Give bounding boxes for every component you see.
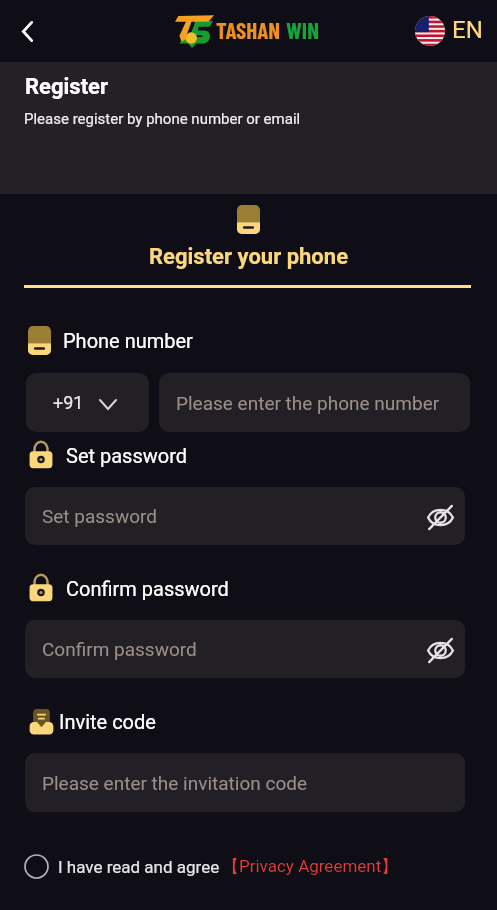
button[interactable]: EN (415, 16, 483, 46)
staticText: Set password (42, 505, 157, 527)
staticText: Please enter the invitation code (42, 772, 308, 794)
staticText: Phone number (63, 329, 193, 352)
button[interactable]: Show password (424, 633, 456, 665)
staticText: +91 (53, 392, 84, 413)
button[interactable]: Please enter the invitation code (25, 753, 465, 812)
button[interactable]: Please enter the phone number (159, 373, 470, 432)
button[interactable]: Back (8, 12, 46, 50)
button[interactable]: +91 (26, 373, 149, 432)
staticText: Register (25, 74, 109, 100)
button[interactable]: Agree to privacy agreement (21, 851, 52, 882)
staticText: Register your phone (149, 244, 349, 270)
button[interactable]: 【Privacy Agreement】 (222, 856, 399, 877)
staticText: I have read and agree (58, 857, 220, 877)
staticText: EN (452, 16, 483, 44)
staticText: Invite code (59, 710, 156, 733)
staticText: Please enter the phone number (176, 392, 440, 414)
staticText: 【Privacy Agreement】 (222, 856, 399, 877)
staticText: Confirm password (42, 638, 197, 660)
staticText: TASHAN (216, 16, 281, 44)
button[interactable]: Confirm password (25, 620, 465, 678)
staticText: Confirm password (66, 577, 229, 600)
staticText: WIN (286, 16, 319, 44)
staticText: Please register by phone number or email (24, 110, 301, 128)
staticText: Set password (66, 444, 188, 467)
button[interactable]: Set password (25, 487, 465, 545)
button[interactable]: Show password (424, 500, 456, 532)
